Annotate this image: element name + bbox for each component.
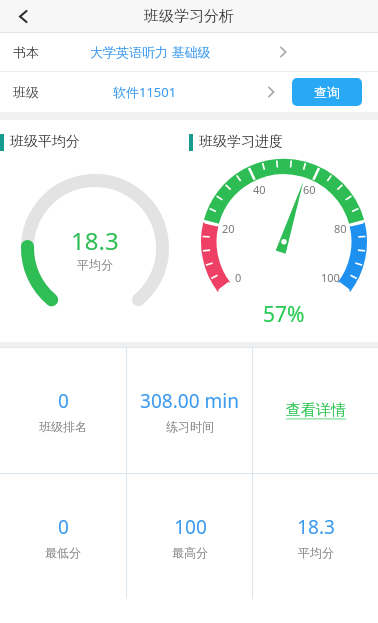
staticText: 0	[235, 270, 242, 285]
staticText: 班级学习分析	[144, 7, 234, 26]
staticText: 软件11501	[113, 83, 177, 101]
button[interactable]: 0	[0, 348, 126, 473]
button[interactable]: 308.00 min	[127, 348, 252, 473]
button[interactable]: 书本	[0, 33, 378, 71]
button[interactable]: Back	[0, 0, 46, 32]
button[interactable]: 100	[127, 474, 252, 599]
button[interactable]: 18.3	[253, 474, 378, 599]
staticText: 100	[321, 270, 340, 285]
staticText: 100	[174, 514, 207, 540]
staticText: 80	[334, 221, 347, 236]
staticText: 查看详情	[286, 401, 346, 420]
staticText: 班级排名	[39, 419, 87, 434]
staticText: 班级	[13, 84, 39, 100]
staticText: 0	[58, 514, 69, 540]
staticText: 班级学习进度	[199, 133, 283, 151]
staticText: 0	[58, 388, 69, 414]
staticText: 查询	[314, 84, 340, 100]
staticText: 最低分	[45, 545, 81, 560]
staticText: 18.3	[297, 514, 335, 540]
button[interactable]: 查看详情	[253, 348, 378, 473]
button[interactable]: 0	[0, 474, 126, 599]
staticText: 60	[303, 182, 316, 197]
staticText: 40	[253, 182, 266, 197]
staticText: 20	[222, 221, 235, 236]
staticText: 练习时间	[166, 419, 214, 434]
staticText: 最高分	[172, 545, 208, 560]
button[interactable]: 软件11501	[39, 72, 250, 112]
staticText: 18.3	[71, 224, 119, 257]
staticText: 大学英语听力 基础级	[90, 43, 211, 61]
button[interactable]	[250, 72, 292, 112]
staticText: 平均分	[298, 545, 334, 560]
staticText: 平均分	[77, 257, 113, 272]
staticText: 57%	[263, 300, 305, 329]
staticText: 308.00 min	[140, 388, 239, 414]
button[interactable]: 查询	[292, 78, 362, 106]
staticText: 书本	[13, 44, 39, 60]
staticText: 班级平均分	[10, 133, 80, 151]
